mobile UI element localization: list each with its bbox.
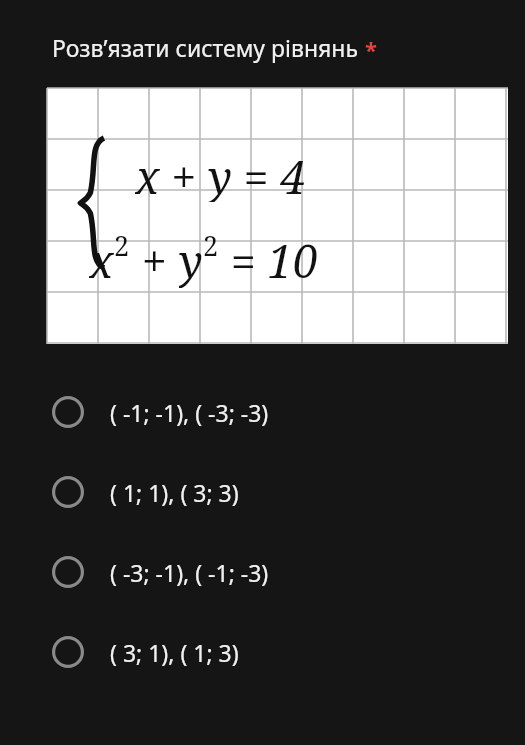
button[interactable]: ( 3; 1), ( 1; 3) <box>0 612 525 692</box>
staticText: ( 3; 1), ( 1; 3) <box>110 637 239 668</box>
staticText: 2 <box>203 227 219 264</box>
staticText: + <box>130 230 179 288</box>
button[interactable]: ( -3; -1), ( -1; -3) <box>0 532 525 612</box>
staticText: ( -1; -1), ( -3; -3) <box>110 397 269 428</box>
staticText: ( 1; 1), ( 3; 3) <box>110 477 239 508</box>
staticText: y <box>179 230 203 288</box>
staticText: x + y = 4 <box>135 146 306 202</box>
staticText: * <box>365 34 377 64</box>
staticText: = 10 <box>219 230 318 288</box>
staticText: Розв’язати систему рівнянь <box>52 32 358 63</box>
staticText: x <box>89 230 114 288</box>
staticText: ( -3; -1), ( -1; -3) <box>110 557 269 588</box>
staticText: 2 <box>114 227 130 264</box>
button[interactable]: ( 1; 1), ( 3; 3) <box>0 452 525 532</box>
button[interactable]: ( -1; -1), ( -3; -3) <box>0 372 525 452</box>
